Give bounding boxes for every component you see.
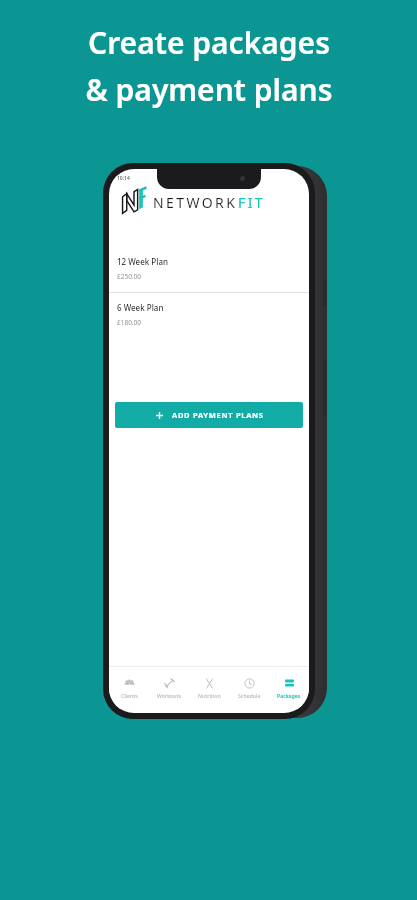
staticText: 10:14 [117, 175, 130, 182]
button[interactable]: Clients [109, 667, 149, 709]
other: Schedule [244, 678, 255, 689]
staticText: Workouts [157, 692, 181, 699]
staticText: £250.00 [117, 272, 142, 281]
staticText: 12 Week Plan [117, 256, 168, 267]
button[interactable]: Schedule [229, 667, 269, 709]
staticText: Schedule [238, 692, 261, 699]
staticText: Nutrition [198, 692, 221, 699]
other: Nutrition [204, 678, 215, 689]
staticText: Create packages [88, 22, 330, 63]
staticText: £180.00 [117, 318, 142, 327]
other: NetworkFit logo [121, 189, 147, 215]
staticText: Clients [121, 692, 138, 699]
button[interactable]: 6 Week Plan [109, 293, 309, 338]
staticText: Packages [277, 692, 301, 699]
other: Clients [124, 678, 135, 689]
staticText: NETWORK [153, 193, 238, 212]
button[interactable]: ADD PAYMENT PLANS [115, 402, 303, 428]
staticText: 6 Week Plan [117, 302, 164, 313]
button[interactable]: 12 Week Plan [109, 247, 309, 292]
other: Packages [284, 678, 295, 689]
staticText: & payment plans [85, 69, 333, 110]
other: Workouts [164, 678, 175, 689]
button[interactable]: Workouts [149, 667, 189, 709]
button[interactable]: Packages [269, 667, 309, 709]
staticText: ADD PAYMENT PLANS [172, 410, 264, 420]
button[interactable]: Nutrition [189, 667, 229, 709]
staticText: FIT [238, 193, 265, 212]
